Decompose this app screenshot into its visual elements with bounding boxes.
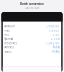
staticText: Fee (4, 33, 9, 36)
staticText: Spread (4, 37, 13, 41)
staticText: USD to EUR (24, 6, 39, 10)
staticText: Arrives (4, 45, 13, 49)
button[interactable]: Spread (3, 37, 61, 41)
button[interactable]: Receives (3, 41, 61, 45)
staticText: Ready (52, 50, 60, 53)
staticText: 2.50 (53, 33, 60, 36)
staticText: Batch conversion (20, 2, 44, 6)
button[interactable]: Fee (3, 33, 61, 37)
staticText: Amount (4, 24, 15, 28)
staticText: 0.8563 (49, 29, 60, 32)
button[interactable]: Status (3, 49, 61, 54)
staticText: 1,500.00 (46, 24, 60, 28)
staticText: Receives (4, 41, 16, 45)
staticText: 1,282.00 (46, 41, 60, 45)
staticText: Today (53, 45, 60, 49)
staticText: Rate (4, 29, 10, 32)
button[interactable]: Amount (3, 24, 61, 28)
button[interactable]: Rate (3, 28, 61, 33)
button[interactable]: Arrives (3, 45, 61, 49)
staticText: Status (4, 50, 11, 53)
staticText: 0.15% (51, 37, 60, 41)
